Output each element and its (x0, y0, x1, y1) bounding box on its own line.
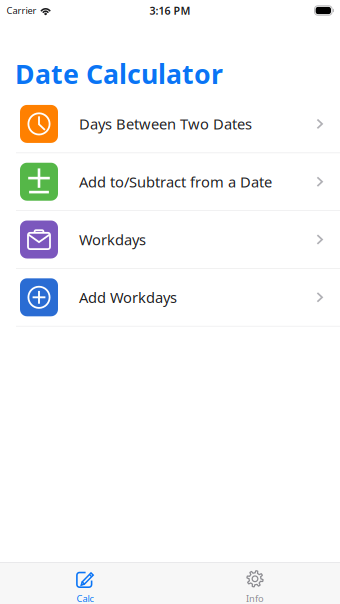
staticText: Add to/Subtract from a Date (79, 172, 272, 191)
button[interactable]: Add Workdays (0, 269, 340, 326)
staticText: Calc (76, 592, 93, 604)
staticText: 3:16 PM (149, 3, 190, 18)
button[interactable]: Info (170, 563, 340, 604)
staticText: Carrier (6, 4, 36, 17)
button[interactable]: Days Between Two Dates (0, 95, 340, 152)
staticText: Info (246, 592, 264, 604)
staticText: Workdays (79, 230, 146, 249)
button[interactable]: Workdays (0, 211, 340, 268)
staticText: Add Workdays (79, 288, 177, 307)
staticText: Days Between Two Dates (79, 114, 252, 134)
button[interactable]: Calc (0, 563, 170, 604)
staticText: Date Calculator (15, 56, 223, 91)
button[interactable]: Add to/Subtract from a Date (0, 153, 340, 210)
